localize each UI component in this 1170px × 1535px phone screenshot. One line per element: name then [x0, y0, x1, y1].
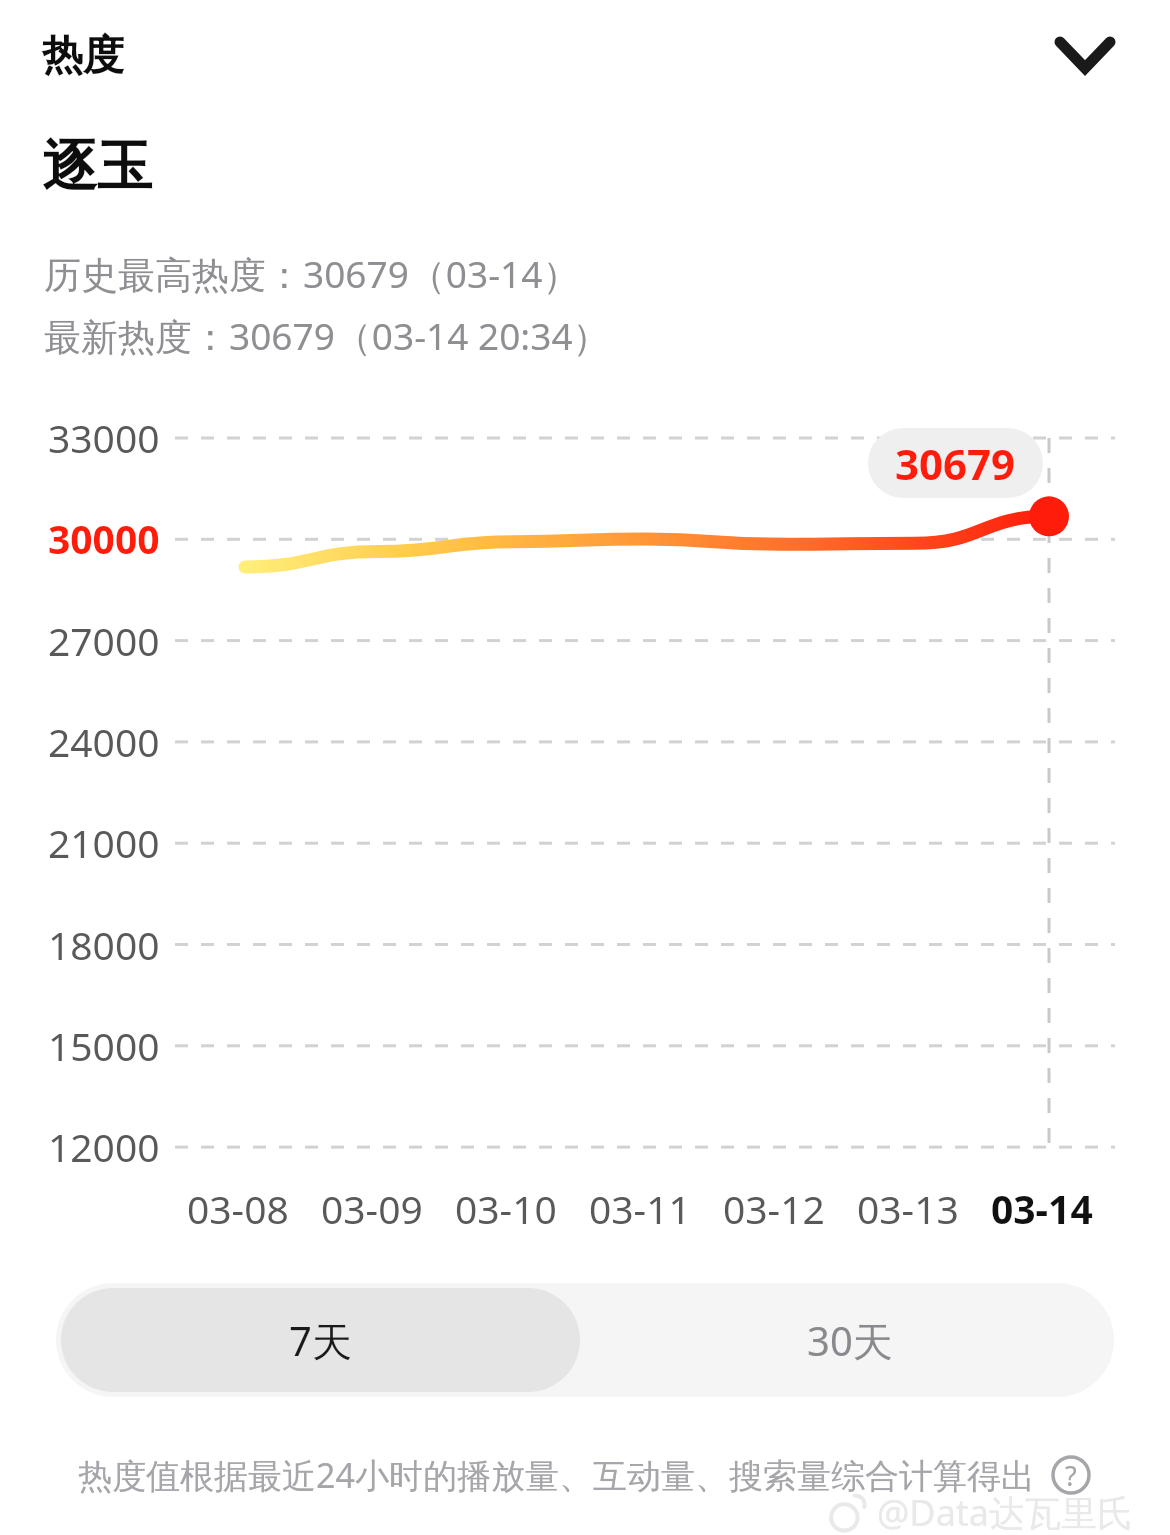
staticText: @Data达瓦里氏 [877, 1488, 1134, 1535]
staticText: 逐玉 [42, 132, 152, 201]
staticText: 03-12 [723, 1182, 825, 1235]
staticText: 热度值根据最近24小时的播放量、互动量、搜索量综合计算得出 [78, 1452, 1035, 1498]
staticText: 热度 [42, 30, 124, 82]
staticText: 03-14 [991, 1182, 1093, 1235]
button[interactable]: Collapse [1030, 8, 1140, 104]
button[interactable]: 30679 [868, 428, 1043, 498]
staticText: 18000 [48, 918, 160, 971]
staticText: 12000 [48, 1120, 160, 1173]
staticText: 27000 [48, 614, 160, 667]
staticText: 03-09 [321, 1182, 423, 1235]
staticText: ? [1065, 1457, 1077, 1494]
staticText: 30000 [48, 512, 160, 565]
button[interactable]: 30天 [585, 1283, 1114, 1397]
staticText: 15000 [48, 1019, 160, 1072]
button[interactable]: 7天 [61, 1288, 580, 1392]
staticText: 03-13 [857, 1182, 959, 1235]
staticText: 最新热度：30679（03-14 20:34） [44, 310, 610, 361]
staticText: 33000 [48, 411, 160, 464]
staticText: 24000 [48, 715, 160, 768]
staticText: 21000 [48, 816, 160, 869]
staticText: 7天 [289, 1313, 352, 1368]
staticText: 30天 [807, 1313, 893, 1368]
staticText: 03-10 [455, 1182, 557, 1235]
staticText: 03-08 [187, 1182, 289, 1235]
staticText: 历史最高热度：30679（03-14） [44, 248, 580, 299]
staticText: 03-11 [589, 1182, 691, 1235]
button[interactable]: Help [1049, 1453, 1093, 1497]
staticText: 30679 [895, 435, 1016, 492]
